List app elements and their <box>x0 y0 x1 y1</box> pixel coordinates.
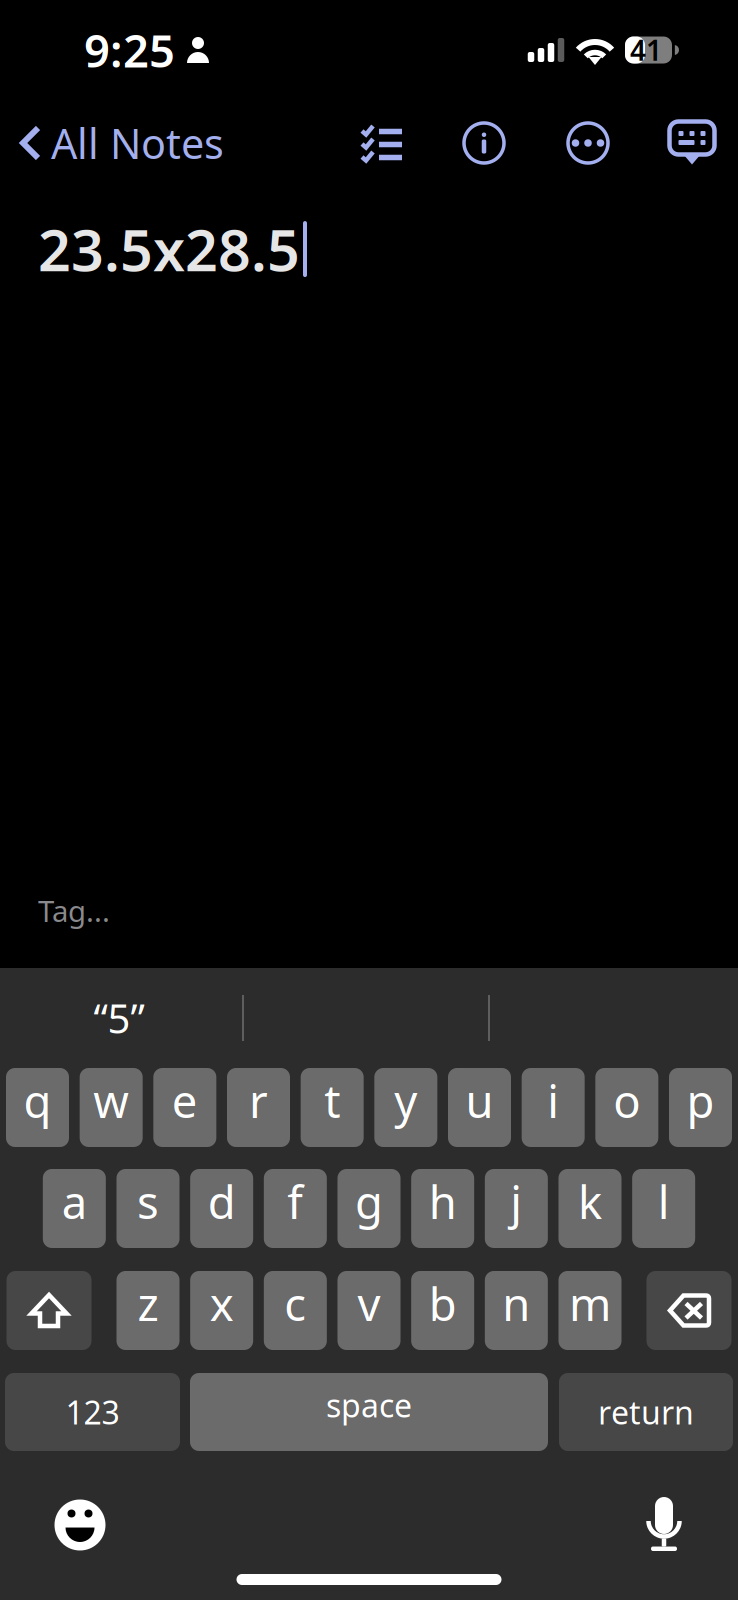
button[interactable]: space <box>190 1373 548 1451</box>
button[interactable]: e <box>153 1068 216 1147</box>
staticText: w <box>93 1070 129 1131</box>
button[interactable]: Checklist <box>359 119 407 167</box>
staticText: i <box>547 1070 559 1131</box>
button[interactable]: j <box>485 1169 548 1248</box>
button[interactable]: Hide keyboard <box>664 115 720 171</box>
button[interactable]: y <box>374 1068 437 1147</box>
button[interactable]: 123 <box>5 1373 180 1451</box>
staticText: z <box>137 1273 158 1334</box>
button[interactable]: Delete <box>646 1271 731 1350</box>
button[interactable]: a <box>43 1169 106 1248</box>
button[interactable]: b <box>411 1271 474 1350</box>
staticText: b <box>429 1273 457 1334</box>
staticText: 9:25 <box>84 20 175 80</box>
staticText: o <box>613 1070 640 1131</box>
button[interactable]: More options <box>560 115 616 171</box>
staticText: All Notes <box>51 116 224 170</box>
button[interactable]: r <box>227 1068 290 1147</box>
staticText: t <box>324 1070 340 1131</box>
staticText: g <box>355 1171 383 1232</box>
button[interactable]: z <box>116 1271 179 1350</box>
staticText: m <box>569 1273 611 1334</box>
staticText: u <box>465 1070 493 1131</box>
staticText: e <box>172 1070 198 1131</box>
staticText: x <box>210 1273 234 1334</box>
button[interactable]: “5” <box>0 983 242 1053</box>
button[interactable]: Info <box>456 115 512 171</box>
button[interactable]: x <box>190 1271 253 1350</box>
button[interactable]: d <box>190 1169 253 1248</box>
staticText: q <box>23 1070 51 1131</box>
staticText: n <box>502 1273 530 1334</box>
button[interactable]: i <box>522 1068 585 1147</box>
staticText: y <box>394 1070 417 1131</box>
button[interactable]: q <box>6 1068 69 1147</box>
button[interactable]: h <box>411 1169 474 1248</box>
staticText: 41 <box>630 31 662 69</box>
button[interactable]: Shift <box>6 1271 91 1350</box>
staticText: v <box>357 1273 380 1334</box>
staticText: k <box>578 1171 602 1232</box>
staticText: d <box>208 1171 236 1232</box>
button[interactable]: g <box>337 1169 400 1248</box>
staticText: j <box>510 1171 522 1232</box>
staticText: “5” <box>93 991 144 1044</box>
staticText: s <box>137 1171 159 1232</box>
staticText: 123 <box>65 1391 119 1433</box>
button[interactable]: p <box>669 1068 732 1147</box>
staticText: Tag... <box>38 891 110 930</box>
button[interactable]: m <box>558 1271 621 1350</box>
staticText: 23.5x28.5 <box>38 211 300 287</box>
button[interactable]: c <box>264 1271 327 1350</box>
button[interactable]: Emoji <box>52 1497 108 1553</box>
button[interactable]: l <box>632 1169 695 1248</box>
button[interactable]: s <box>116 1169 179 1248</box>
button[interactable]: w <box>80 1068 143 1147</box>
staticText: r <box>249 1070 268 1131</box>
staticText: c <box>284 1273 306 1334</box>
button[interactable]: n <box>485 1271 548 1350</box>
staticText: f <box>287 1171 303 1232</box>
button[interactable]: u <box>448 1068 511 1147</box>
staticText: l <box>658 1171 670 1232</box>
button[interactable]: return <box>559 1373 733 1451</box>
button[interactable]: v <box>337 1271 400 1350</box>
button[interactable]: Dictate <box>646 1497 682 1553</box>
staticText: a <box>62 1171 87 1232</box>
button[interactable]: k <box>558 1169 621 1248</box>
staticText: p <box>686 1070 714 1131</box>
button[interactable]: o <box>595 1068 658 1147</box>
staticText: space <box>326 1384 412 1426</box>
staticText: h <box>429 1171 457 1232</box>
button[interactable]: f <box>264 1169 327 1248</box>
staticText: return <box>598 1391 694 1433</box>
button[interactable]: All Notes <box>20 112 224 174</box>
button[interactable]: t <box>301 1068 364 1147</box>
